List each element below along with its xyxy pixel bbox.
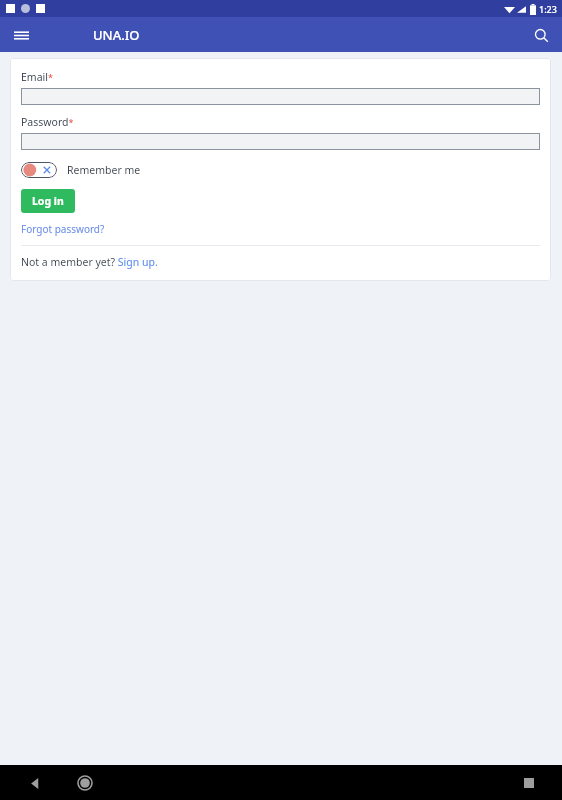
button[interactable]: Recent apps xyxy=(516,770,542,796)
staticText: Remember me xyxy=(67,163,141,177)
staticText: UNA.IO xyxy=(93,26,140,44)
button[interactable]: Search xyxy=(524,18,558,52)
other: Remember me toggle xyxy=(21,162,57,178)
button[interactable] xyxy=(21,88,540,105)
staticText: Forgot password? xyxy=(21,222,105,236)
staticText: Password* xyxy=(21,115,74,129)
button[interactable] xyxy=(21,133,540,150)
button[interactable]: Remember me toggle xyxy=(21,162,141,178)
staticText: 1:23 xyxy=(539,3,557,15)
button[interactable]: Not a member yet? Sign up. xyxy=(21,255,158,269)
button[interactable]: Forgot password? xyxy=(21,222,105,236)
button[interactable]: Back xyxy=(22,770,48,796)
staticText: Not a member yet? Sign up. xyxy=(21,255,158,269)
button[interactable]: Menu xyxy=(4,18,38,52)
staticText: Log in xyxy=(32,194,64,208)
staticText: Email* xyxy=(21,70,53,84)
button[interactable]: Log in xyxy=(21,189,75,213)
button[interactable]: Home xyxy=(72,770,98,796)
